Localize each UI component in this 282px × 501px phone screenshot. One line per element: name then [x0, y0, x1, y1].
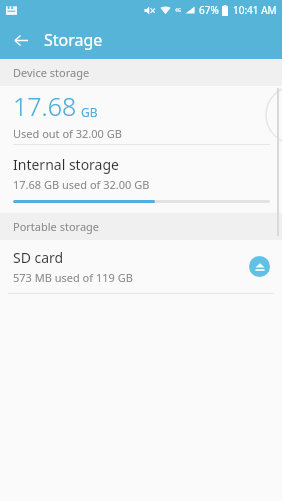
staticText: 4G: [175, 7, 182, 14]
staticText: 10:41 AM: [233, 3, 277, 17]
button[interactable]: SD card: [0, 240, 282, 293]
staticText: 573 MB used of 119 GB: [13, 270, 133, 285]
staticText: 17.68: [13, 89, 77, 123]
staticText: SD card: [13, 248, 64, 267]
staticText: Storage: [44, 29, 103, 51]
staticText: Device storage: [13, 65, 90, 80]
staticText: 17.68 GB used of 32.00 GB: [13, 177, 150, 192]
button[interactable]: Internal storage: [0, 145, 282, 213]
staticText: GB: [81, 104, 98, 120]
staticText: 67%: [199, 3, 219, 17]
staticText: Internal storage: [13, 155, 119, 174]
button[interactable]: Back: [7, 26, 35, 54]
staticText: Portable storage: [13, 219, 100, 234]
button[interactable]: Eject SD card: [249, 256, 270, 277]
staticText: Used out of 32.00 GB: [13, 126, 122, 141]
